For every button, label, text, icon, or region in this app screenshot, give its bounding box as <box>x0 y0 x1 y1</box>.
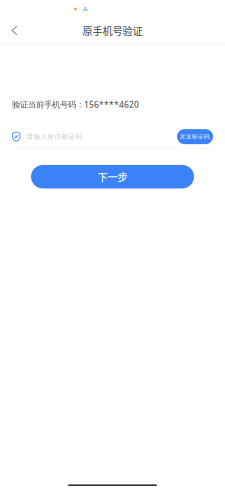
button[interactable]: Back <box>0 18 29 43</box>
staticText: 原手机号验证 <box>82 23 142 38</box>
button[interactable]: 发送验证码 <box>177 129 213 144</box>
staticText: 验证当前手机号码：156****4620 <box>12 99 139 110</box>
staticText: 发送验证码 <box>180 133 210 140</box>
staticText: 下一步 <box>97 169 127 184</box>
staticText: 请输入短信验证码 <box>27 132 83 141</box>
button[interactable]: 下一步 <box>31 165 194 188</box>
